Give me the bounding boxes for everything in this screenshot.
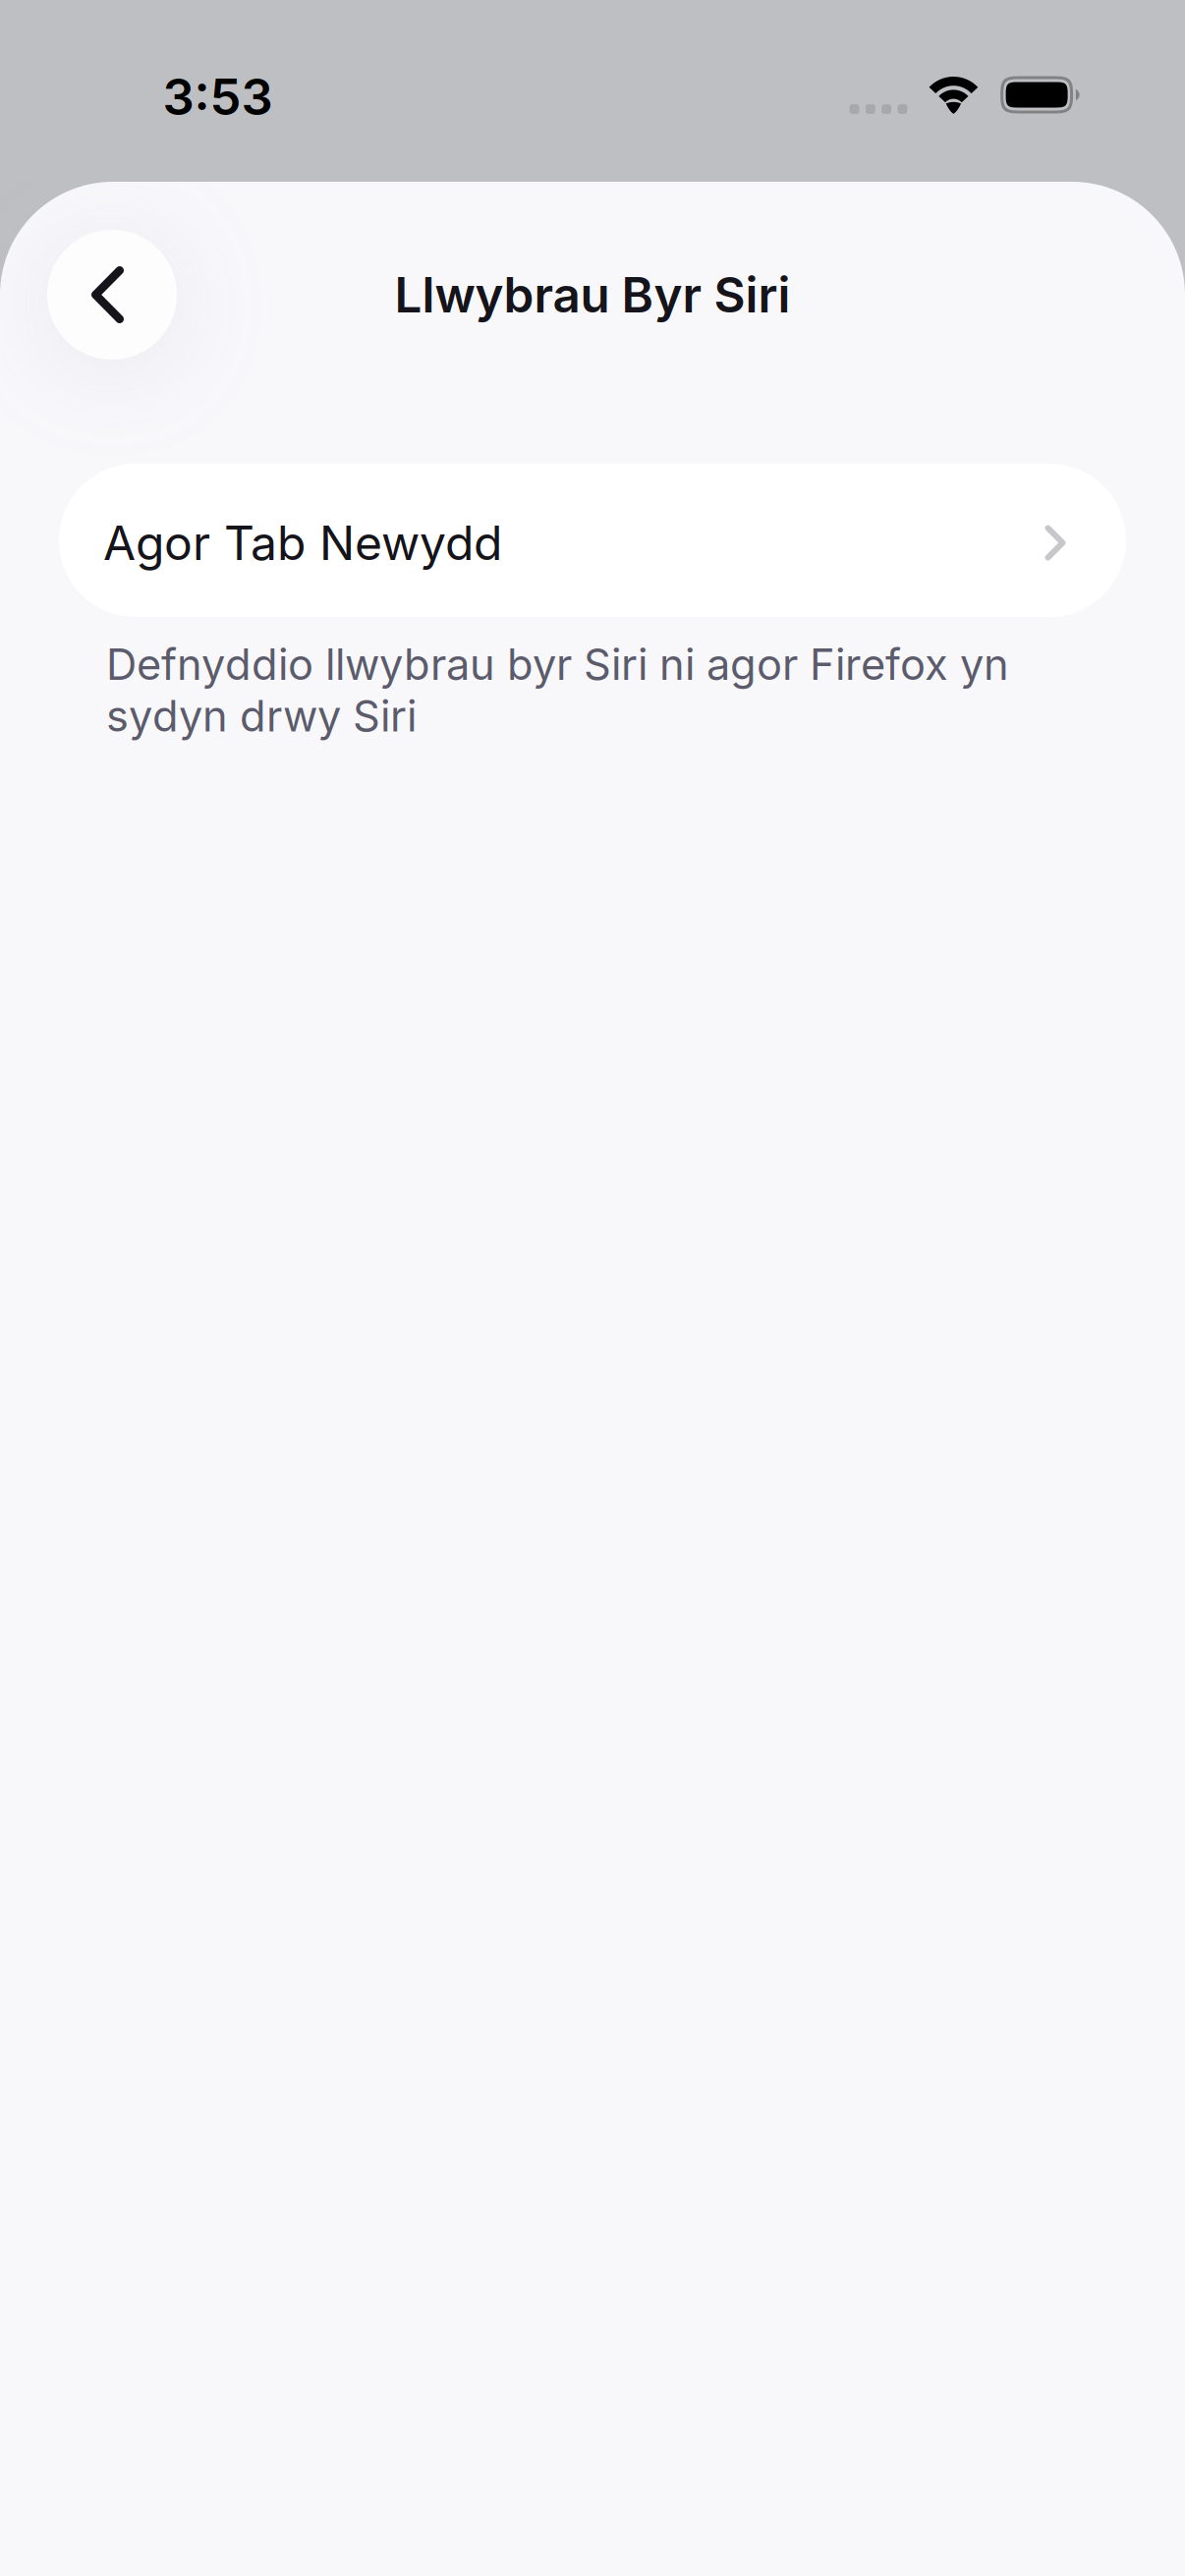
staticText: Llwybrau Byr Siri: [395, 265, 790, 324]
staticText: Defnyddio llwybrau byr Siri ni agor Fire…: [106, 639, 1009, 742]
button[interactable]: Agor Tab Newydd: [59, 464, 1126, 617]
button[interactable]: Back: [47, 230, 177, 360]
staticText: Agor Tab Newydd: [103, 514, 502, 571]
staticText: 3:53: [163, 67, 273, 127]
